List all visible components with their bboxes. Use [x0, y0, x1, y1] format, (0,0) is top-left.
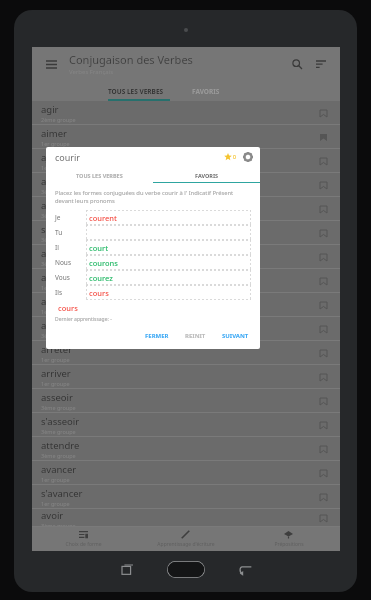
staticText: s'avancer [41, 487, 83, 500]
button[interactable]: Ils [55, 285, 251, 300]
button[interactable]: arrêter [32, 341, 340, 365]
staticText: 2ème groupe [41, 116, 76, 123]
staticText: FAVORIS [192, 87, 220, 96]
button[interactable]: Toggle favourite [315, 273, 331, 289]
staticText: cours [89, 288, 109, 298]
staticText: Nous [55, 258, 72, 267]
button[interactable]: cours [58, 303, 78, 313]
button[interactable]: Toggle favourite [315, 441, 331, 457]
button[interactable]: Apprentissage d'écriture [134, 527, 237, 551]
button[interactable]: Toggle favourite [315, 201, 331, 217]
button[interactable]: SUIVANT [219, 330, 252, 342]
button[interactable]: Toggle favourite [315, 345, 331, 361]
button[interactable]: Settings [242, 151, 254, 163]
staticText: 3ème groupe [41, 428, 76, 435]
staticText: 1er groupe [41, 284, 70, 291]
button[interactable]: avoir [32, 509, 340, 527]
button[interactable]: Toggle favourite [315, 153, 331, 169]
button[interactable]: Toggle favourite [315, 489, 331, 505]
staticText: avancer [41, 463, 77, 476]
button[interactable]: Toggle favourite [315, 465, 331, 481]
staticText: 3ème groupe [41, 212, 76, 219]
button[interactable]: Vous [55, 270, 251, 285]
button[interactable]: Toggle favourite [315, 369, 331, 385]
button[interactable]: TOUS LES VERBES [46, 167, 153, 183]
button[interactable]: Toggle favourite [315, 297, 331, 313]
button[interactable]: Je [55, 210, 251, 225]
button[interactable]: apparaitre [32, 245, 340, 269]
button[interactable]: Prépositions [237, 527, 340, 551]
button[interactable]: aller [32, 173, 340, 197]
staticText: 3ème groupe [41, 236, 76, 243]
button[interactable]: FAVORIS [153, 167, 260, 183]
button[interactable]: FERMER [142, 330, 172, 342]
button[interactable]: Tu [55, 225, 251, 240]
button[interactable]: ajouter [32, 149, 340, 173]
staticText: SUIVANT [222, 332, 249, 340]
button[interactable]: Toggle favourite [315, 321, 331, 337]
button[interactable]: Choix de forme [32, 527, 134, 551]
staticText: 1er groupe [41, 164, 70, 171]
staticText: 1er groupe [41, 308, 70, 315]
button[interactable]: Il [55, 240, 251, 255]
staticText: 3ème groupe [41, 188, 76, 195]
staticText: s'asseoir [41, 415, 80, 428]
button[interactable]: asseoir [32, 389, 340, 413]
button[interactable]: aimer [32, 125, 340, 149]
button[interactable]: Toggle favourite [315, 225, 331, 241]
button[interactable]: s'avancer [32, 485, 340, 509]
staticText: courent [89, 213, 117, 223]
button[interactable]: apercevoir [32, 197, 340, 221]
staticText: Choix de forme [65, 541, 102, 548]
staticText: ajouter [41, 151, 74, 164]
staticText: Je [55, 213, 61, 222]
button[interactable]: apprendre [32, 317, 340, 341]
button[interactable]: Nous [55, 255, 251, 270]
button[interactable]: Toggle favourite [315, 177, 331, 193]
staticText: 1er groupe [41, 476, 70, 483]
staticText: TOUS LES VERBES [108, 87, 164, 96]
button[interactable]: avancer [32, 461, 340, 485]
staticText: FERMER [145, 332, 169, 340]
button[interactable]: appeler [32, 269, 340, 293]
staticText: TOUS LES VERBES [76, 172, 123, 179]
staticText: Verbes Français [69, 68, 114, 76]
button[interactable]: Toggle favourite [315, 249, 331, 265]
button[interactable]: arriver [32, 365, 340, 389]
staticText: 3ème groupe [41, 452, 76, 459]
staticText: s'apercevoir [41, 223, 95, 236]
button[interactable]: Search [287, 54, 307, 74]
staticText: 1er groupe [41, 380, 70, 387]
staticText: court [89, 243, 109, 253]
staticText: FAVORIS [195, 172, 219, 179]
button[interactable]: attendre [32, 437, 340, 461]
button[interactable]: Toggle favourite [315, 129, 331, 145]
staticText: Il [55, 243, 59, 252]
staticText: attendre [41, 439, 80, 452]
staticText: agir [41, 103, 59, 116]
button[interactable]: agir [32, 101, 340, 125]
button[interactable]: apporter [32, 293, 340, 317]
button[interactable]: Toggle favourite [315, 105, 331, 121]
button[interactable]: Toggle favourite [315, 417, 331, 433]
staticText: courez [89, 273, 113, 283]
staticText: arriver [41, 367, 71, 380]
staticText: 3ème groupe [41, 332, 76, 339]
button[interactable]: Toggle favourite [315, 393, 331, 409]
staticText: 1er groupe [41, 500, 70, 507]
button[interactable]: Open navigation menu [41, 54, 61, 74]
button[interactable]: s'apercevoir [32, 221, 340, 245]
staticText: REINIT [185, 332, 206, 340]
staticText: avoir [41, 509, 64, 522]
button[interactable]: Sort [311, 54, 331, 74]
staticText: aller [41, 175, 61, 188]
staticText: 1er groupe [41, 140, 70, 147]
button[interactable]: Toggle favourite [315, 510, 331, 526]
staticText: Vous [55, 273, 70, 282]
button[interactable]: FAVORIS [192, 81, 220, 101]
button[interactable]: REINIT [182, 330, 209, 342]
button[interactable]: TOUS LES VERBES [108, 81, 164, 101]
staticText: aimer [41, 127, 67, 140]
button[interactable]: s'asseoir [32, 413, 340, 437]
button[interactable]: Favourite points [224, 153, 236, 161]
